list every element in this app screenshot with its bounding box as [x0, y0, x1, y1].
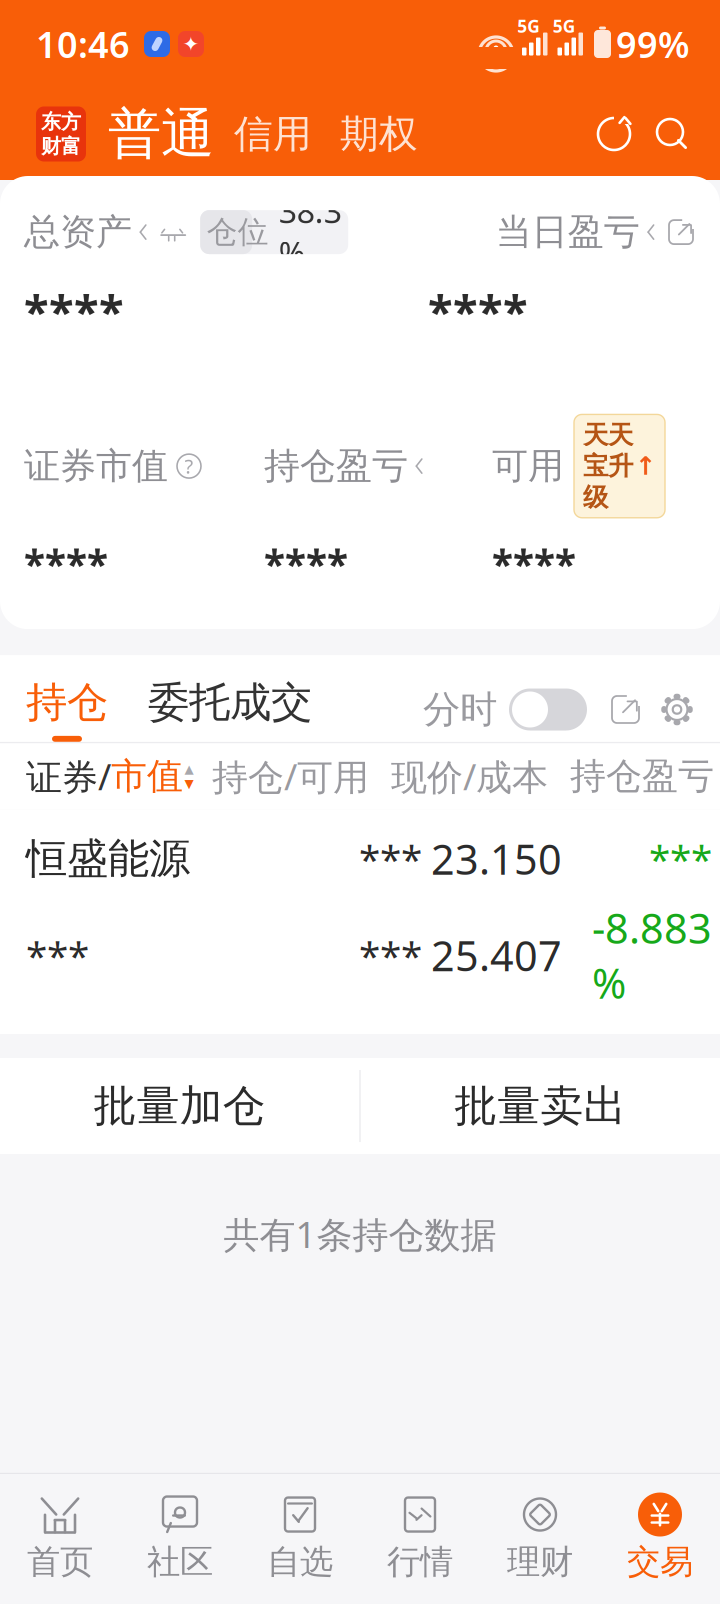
staticText: ↑: [635, 452, 656, 480]
button[interactable]: 持仓盈亏: [264, 444, 492, 488]
staticText: ****: [492, 538, 576, 589]
button[interactable]: 社区: [120, 1486, 240, 1590]
staticText: ▼: [184, 777, 193, 790]
staticText: 持仓盈亏: [264, 444, 408, 488]
staticText: 可用: [492, 444, 564, 488]
staticText: 23.150: [431, 831, 562, 886]
staticText: 25.407: [431, 928, 562, 983]
staticText: 仓位: [207, 213, 269, 251]
staticText: 交易: [627, 1541, 693, 1582]
staticText: 现价/成本: [391, 752, 548, 800]
staticText: 财富: [41, 134, 81, 159]
button[interactable]: 分享: [609, 693, 642, 726]
staticText: 99%: [616, 20, 690, 68]
staticText: ***: [649, 833, 712, 884]
staticText: 5G: [553, 14, 576, 37]
button[interactable]: 行情: [360, 1486, 480, 1590]
button[interactable]: 期权: [326, 102, 432, 166]
staticText: 批量加仓: [94, 1080, 266, 1132]
staticText: ?: [184, 453, 193, 479]
button[interactable]: 信用: [220, 102, 326, 166]
staticText: 普通: [108, 101, 214, 167]
staticText: 证券/: [26, 752, 111, 800]
staticText: ****: [24, 538, 108, 589]
staticText: 10:46: [36, 20, 130, 68]
staticText: 总资产: [24, 210, 132, 254]
staticText: 天天宝升级: [583, 419, 633, 513]
staticText: 当日盈亏: [496, 210, 640, 254]
staticText: 38.3%: [279, 190, 342, 275]
staticText: 证券市值: [24, 444, 168, 488]
staticText: 批量卖出: [454, 1080, 626, 1132]
button[interactable]: 批量加仓: [0, 1058, 359, 1154]
staticText: 自选: [267, 1541, 333, 1582]
button[interactable]: 首页: [0, 1486, 120, 1590]
button[interactable]: 持仓盈亏: [548, 754, 714, 798]
staticText: ***: [26, 929, 89, 981]
button[interactable]: 自选: [240, 1486, 360, 1590]
button[interactable]: 搜索: [634, 114, 692, 154]
button[interactable]: 持仓/可用: [212, 752, 369, 800]
staticText: 委托成交: [148, 677, 312, 728]
staticText: 持仓: [26, 677, 108, 728]
button[interactable]: 持仓: [26, 677, 138, 742]
staticText: 理财: [507, 1541, 573, 1582]
staticText: 社区: [147, 1541, 213, 1582]
staticText: ****: [428, 280, 528, 340]
button[interactable]: 仓位: [188, 210, 348, 254]
button[interactable]: 普通: [92, 101, 220, 167]
button[interactable]: 证券/: [26, 752, 195, 800]
staticText: 首页: [27, 1541, 93, 1582]
staticText: 共有1条持仓数据: [223, 1210, 496, 1258]
staticText: ****: [264, 538, 348, 589]
staticText: 东方: [41, 109, 81, 134]
staticText: 信用: [234, 110, 312, 158]
staticText: 持仓盈亏: [570, 754, 714, 798]
button[interactable]: 理财: [480, 1486, 600, 1590]
staticText: ***: [359, 833, 422, 884]
staticText: 分时: [423, 687, 497, 732]
staticText: 行情: [387, 1541, 453, 1582]
staticText: ✦: [182, 33, 199, 55]
button[interactable]: 现价/成本: [369, 752, 548, 800]
button[interactable]: 当日盈亏: [496, 210, 696, 254]
staticText: ****: [24, 280, 124, 340]
button[interactable]: 总资产: [24, 210, 148, 254]
button[interactable]: 批量卖出: [361, 1058, 720, 1154]
button[interactable]: 委托成交: [138, 677, 322, 742]
staticText: ***: [359, 929, 422, 981]
staticText: ▲: [184, 762, 193, 776]
button[interactable]: 显示金额: [148, 222, 188, 242]
button[interactable]: 分时: [423, 687, 587, 732]
staticText: -8.883%: [592, 900, 712, 1010]
button[interactable]: 刷新: [594, 114, 634, 154]
button[interactable]: 设置: [642, 692, 694, 726]
staticText: 期权: [340, 110, 418, 158]
button[interactable]: 天天宝升级: [574, 414, 665, 518]
staticText: 5G: [517, 14, 540, 37]
button[interactable]: 恒盛能源: [0, 809, 720, 1034]
staticText: 恒盛能源: [26, 833, 190, 884]
staticText: 持仓/可用: [212, 752, 369, 800]
staticText: 市值: [111, 754, 183, 798]
button[interactable]: 交易: [600, 1486, 720, 1590]
